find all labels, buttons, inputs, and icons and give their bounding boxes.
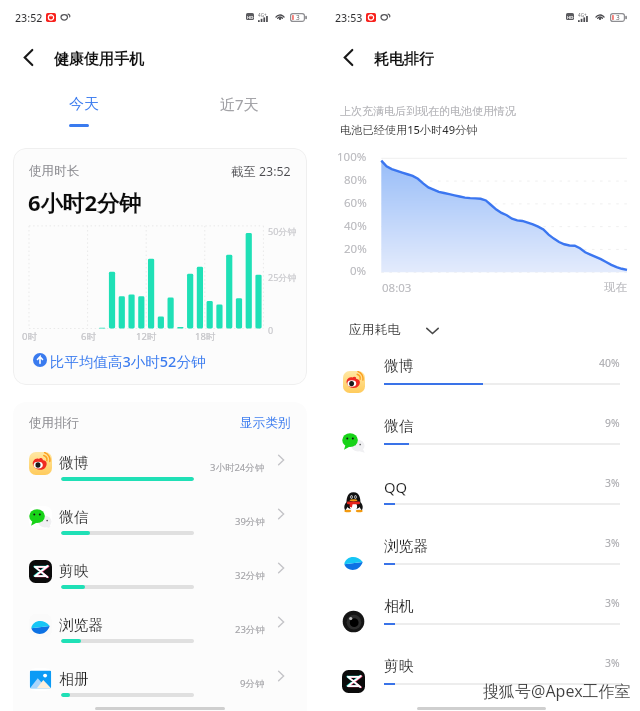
staticText: 电池已经使用15小时49分钟 bbox=[340, 122, 478, 137]
staticText: 3 bbox=[296, 13, 300, 22]
staticText: 相机 bbox=[384, 597, 414, 616]
staticText: 显示类别 bbox=[240, 415, 291, 431]
staticText: 剪映 bbox=[384, 657, 414, 676]
button[interactable]: 微信 bbox=[29, 492, 291, 546]
staticText: 9% bbox=[605, 416, 620, 430]
button[interactable]: 相册 bbox=[29, 654, 291, 708]
staticText: 今天 bbox=[69, 95, 99, 114]
staticText: 4G+ bbox=[258, 12, 267, 18]
button[interactable]: 今天 bbox=[60, 89, 108, 120]
button[interactable]: 应用耗电 bbox=[349, 322, 440, 338]
button[interactable]: 微博 bbox=[29, 438, 291, 492]
staticText: 上次充满电后到现在的电池使用情况 bbox=[340, 104, 516, 118]
staticText: 25分钟 bbox=[268, 271, 297, 283]
staticText: 6时 bbox=[81, 330, 96, 343]
staticText: 3 bbox=[616, 13, 620, 22]
staticText: 100% bbox=[337, 149, 367, 165]
staticText: 23:53 bbox=[335, 11, 363, 26]
button[interactable]: 浏览器 bbox=[29, 600, 291, 654]
staticText: 0时 bbox=[22, 330, 37, 343]
staticText: 耗电排行 bbox=[374, 50, 434, 69]
staticText: HD bbox=[247, 14, 254, 20]
staticText: 3小时24分钟 bbox=[210, 461, 265, 474]
staticText: 40% bbox=[599, 356, 620, 370]
staticText: 60% bbox=[344, 195, 367, 211]
staticText: 健康使用手机 bbox=[54, 50, 144, 69]
button[interactable]: Back bbox=[328, 37, 368, 77]
staticText: 使用时长 bbox=[29, 163, 80, 179]
staticText: 6小时2分钟 bbox=[28, 187, 142, 217]
button[interactable]: 浏览器 bbox=[320, 525, 640, 585]
staticText: 32分钟 bbox=[235, 569, 265, 582]
staticText: 50分钟 bbox=[268, 225, 297, 237]
staticText: 12时 bbox=[136, 330, 157, 343]
staticText: 比平均值高3小时52分钟 bbox=[50, 351, 206, 371]
staticText: 4G+ bbox=[578, 12, 587, 18]
staticText: 80% bbox=[344, 172, 367, 188]
staticText: 0 bbox=[268, 324, 274, 336]
button[interactable]: 近7天 bbox=[211, 88, 268, 120]
staticText: 9分钟 bbox=[240, 677, 265, 690]
staticText: 3% bbox=[605, 596, 620, 610]
button[interactable]: Back bbox=[8, 37, 48, 77]
staticText: 08:03 bbox=[382, 280, 412, 296]
button[interactable]: 微博 bbox=[320, 345, 640, 405]
button[interactable]: 相机 bbox=[320, 585, 640, 645]
staticText: 20% bbox=[344, 241, 367, 257]
staticText: 40% bbox=[344, 218, 367, 234]
staticText: 剪映 bbox=[59, 562, 89, 581]
staticText: 浏览器 bbox=[384, 537, 429, 556]
staticText: 3% bbox=[605, 656, 620, 670]
staticText: 应用耗电 bbox=[349, 322, 401, 338]
staticText: 18时 bbox=[195, 330, 216, 343]
button[interactable]: 剪映 bbox=[29, 546, 291, 600]
staticText: 浏览器 bbox=[59, 616, 104, 635]
staticText: 现在 bbox=[604, 280, 627, 294]
staticText: 0% bbox=[350, 263, 367, 279]
button[interactable]: 剪映 bbox=[320, 645, 640, 705]
staticText: 搜狐号@Apex工作室 bbox=[483, 680, 631, 702]
button[interactable]: 微信 bbox=[320, 405, 640, 465]
staticText: QQ bbox=[384, 477, 408, 497]
staticText: 微信 bbox=[59, 508, 89, 527]
staticText: 3% bbox=[605, 476, 620, 490]
staticText: 23分钟 bbox=[235, 623, 265, 636]
staticText: 39分钟 bbox=[235, 515, 265, 528]
staticText: 截至 23:52 bbox=[231, 163, 291, 180]
staticText: 近7天 bbox=[220, 94, 259, 114]
staticText: 相册 bbox=[59, 670, 89, 689]
staticText: 23:52 bbox=[15, 11, 43, 26]
button[interactable]: 显示类别 bbox=[240, 415, 291, 431]
staticText: HD bbox=[567, 14, 574, 20]
staticText: 微信 bbox=[384, 417, 414, 436]
button[interactable]: QQ bbox=[320, 465, 640, 525]
staticText: 微博 bbox=[59, 454, 89, 473]
staticText: 微博 bbox=[384, 357, 414, 376]
staticText: 3% bbox=[605, 536, 620, 550]
staticText: 使用排行 bbox=[29, 415, 80, 431]
